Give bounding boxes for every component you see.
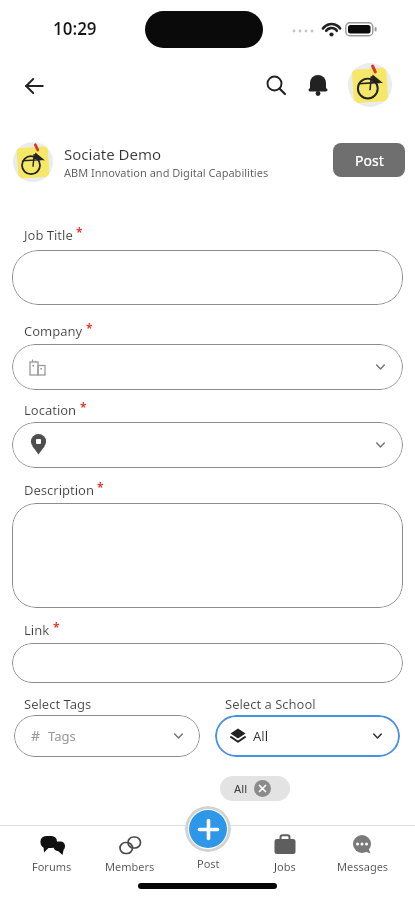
button[interactable]: Jobs	[249, 827, 321, 879]
staticText: Tags	[48, 727, 76, 745]
staticText: Post	[197, 856, 220, 871]
staticText: Members	[105, 859, 155, 874]
button[interactable]	[258, 67, 294, 103]
staticText: Jobs	[274, 859, 296, 874]
staticText: *	[77, 399, 87, 415]
button[interactable]: Members	[94, 827, 166, 879]
staticText: 10:29	[53, 17, 97, 40]
staticText: *	[83, 320, 93, 336]
button[interactable]	[15, 67, 53, 105]
button[interactable]: All	[220, 776, 290, 801]
staticText: Link	[24, 621, 50, 639]
button[interactable]	[12, 344, 403, 390]
button[interactable]: Forums	[16, 827, 88, 879]
staticText: Select a School	[225, 695, 316, 713]
button[interactable]: Post	[333, 143, 405, 177]
button[interactable]: All	[215, 715, 400, 757]
staticText: Description	[24, 481, 94, 499]
staticText: Select Tags	[24, 695, 92, 713]
button[interactable]	[13, 142, 53, 182]
button[interactable]: Messages	[327, 827, 399, 879]
staticText: Sociate Demo	[64, 144, 162, 164]
button[interactable]	[12, 643, 403, 683]
button[interactable]: #	[14, 715, 200, 757]
staticText: Location	[24, 401, 77, 419]
button[interactable]	[185, 806, 231, 852]
button[interactable]	[348, 63, 392, 107]
button[interactable]	[12, 422, 403, 468]
button[interactable]	[300, 67, 336, 103]
staticText: All	[253, 727, 269, 745]
button[interactable]	[12, 250, 403, 305]
staticText: All	[234, 781, 248, 796]
staticText: *	[50, 619, 60, 635]
staticText: Job Title	[24, 226, 73, 244]
staticText: ABM Innovation and Digital Capabilities	[64, 165, 269, 180]
staticText: Messages	[337, 859, 389, 874]
staticText: *	[94, 479, 104, 495]
staticText: *	[73, 224, 83, 240]
staticText: Forums	[32, 859, 72, 874]
staticText: Post	[355, 151, 384, 170]
button[interactable]	[12, 503, 403, 608]
staticText: #	[31, 726, 41, 745]
staticText: Company	[24, 322, 83, 340]
